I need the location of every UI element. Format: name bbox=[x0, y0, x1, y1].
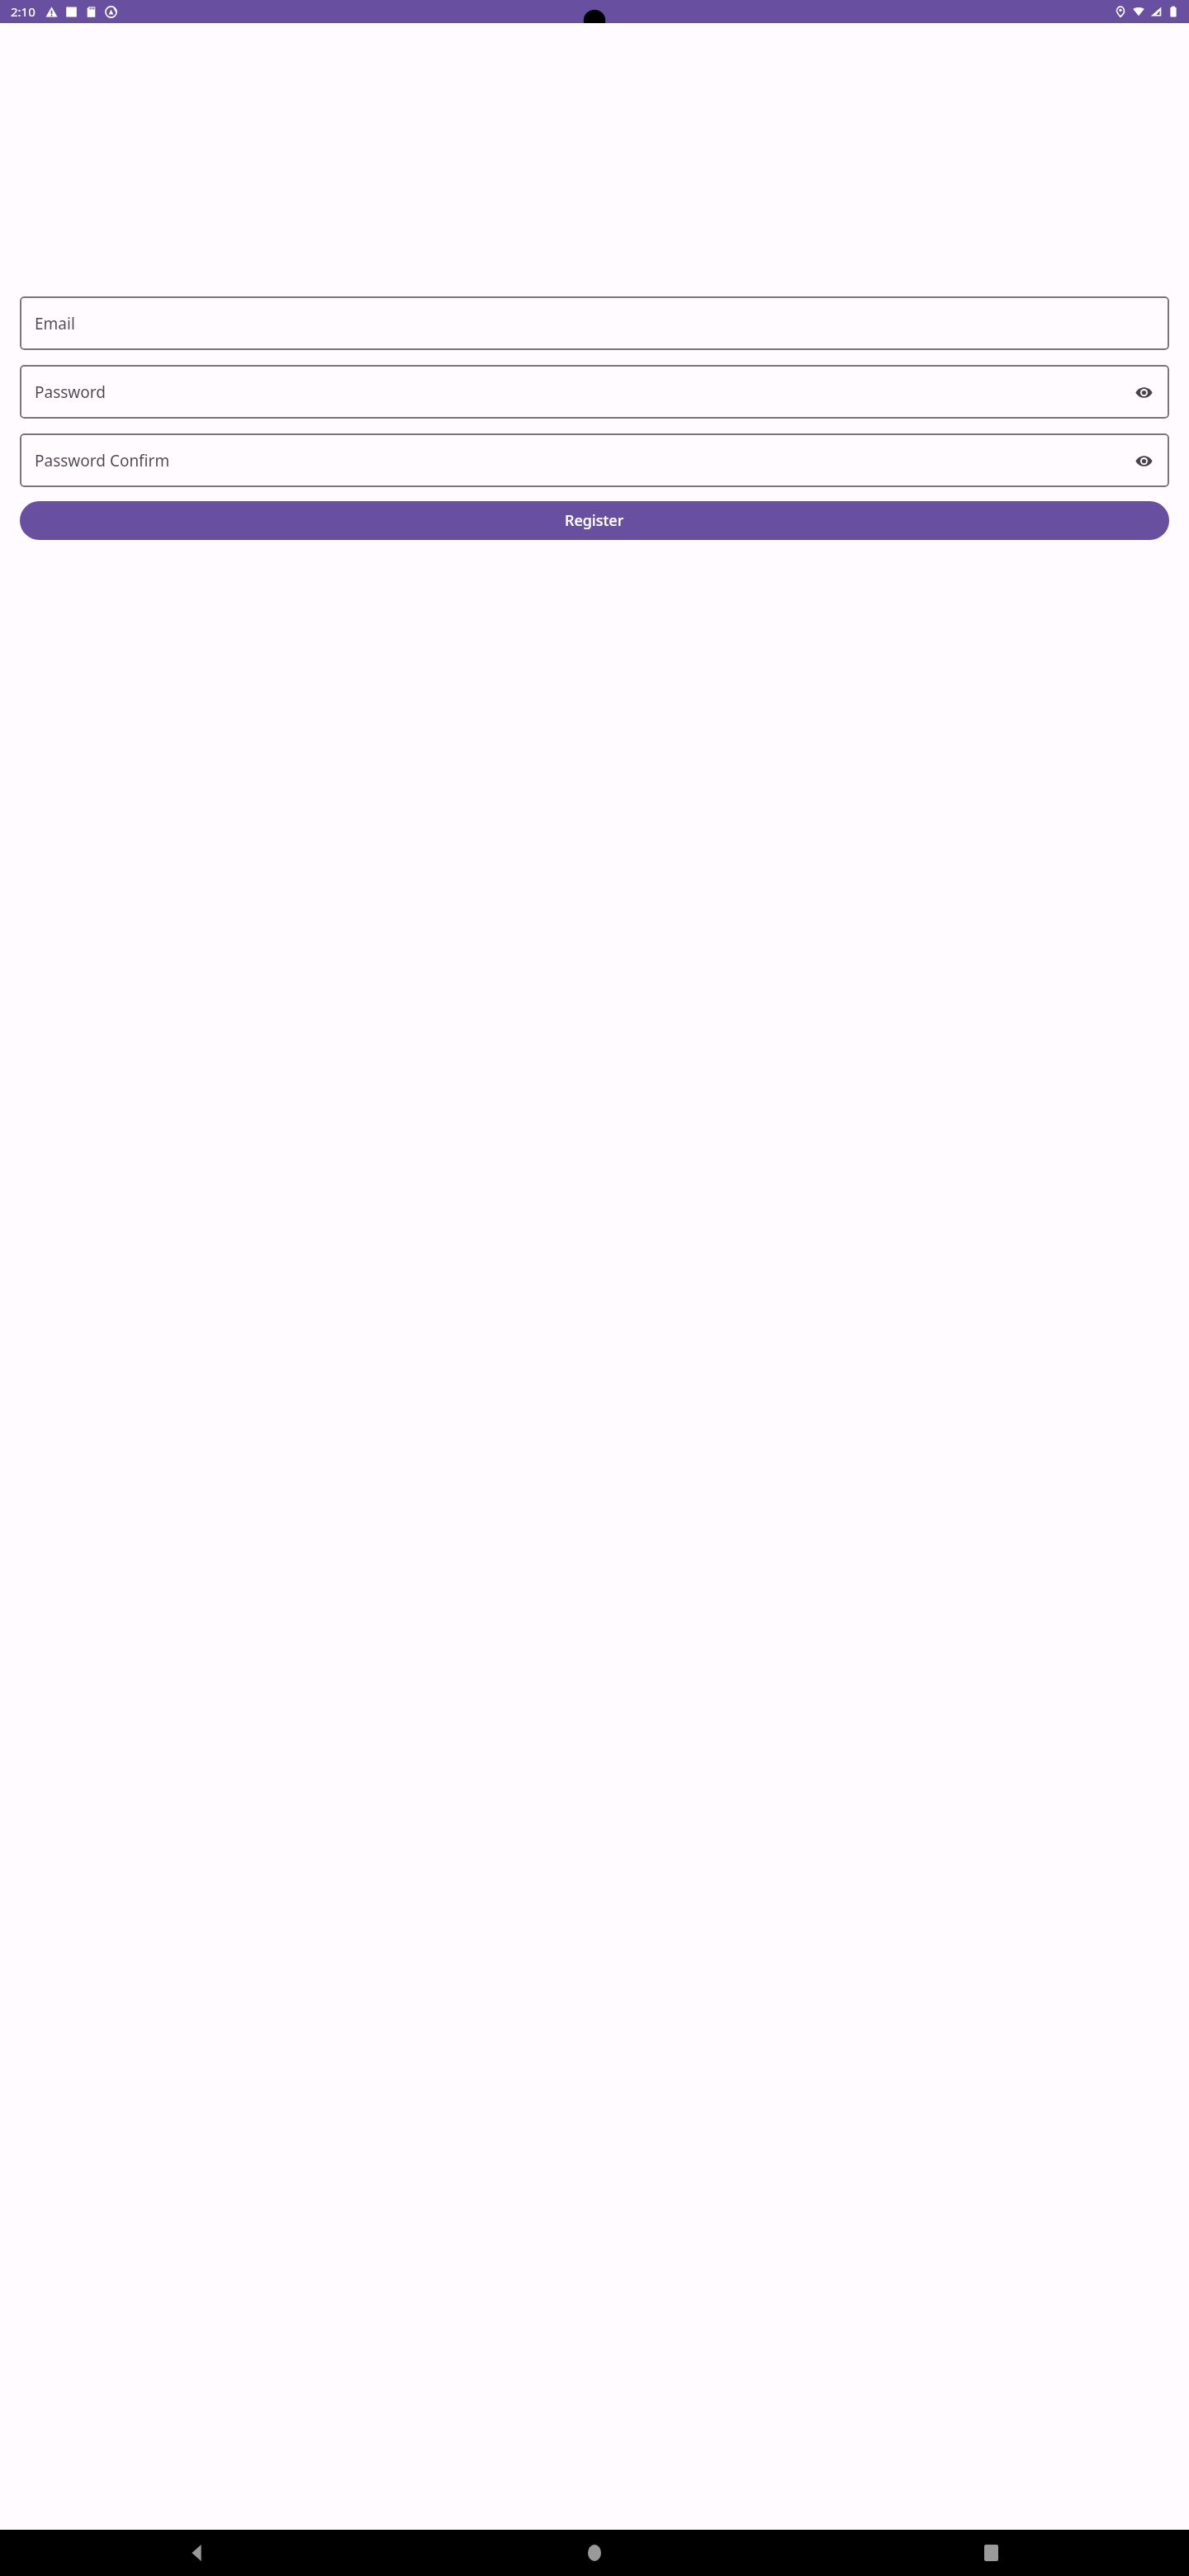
staticText: Email bbox=[35, 313, 75, 334]
button[interactable]: Password Confirm bbox=[20, 433, 1169, 487]
button[interactable]: Register bbox=[20, 501, 1169, 540]
button[interactable]: Recent apps bbox=[793, 2530, 1189, 2576]
button[interactable]: Password bbox=[20, 365, 1169, 419]
button[interactable]: Show password bbox=[1130, 379, 1157, 405]
staticText: Register bbox=[565, 510, 624, 531]
staticText: 2:10 bbox=[11, 3, 36, 20]
staticText: Password Confirm bbox=[35, 450, 170, 471]
button[interactable]: Home bbox=[396, 2530, 793, 2576]
button[interactable]: Show password bbox=[1130, 447, 1157, 474]
staticText: Password bbox=[35, 381, 106, 403]
button[interactable]: Email bbox=[20, 296, 1169, 350]
button[interactable]: Back bbox=[0, 2530, 396, 2576]
